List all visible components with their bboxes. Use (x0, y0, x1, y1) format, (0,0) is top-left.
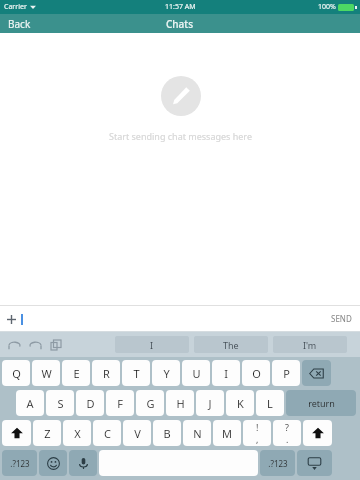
staticText: , (256, 433, 259, 445)
staticText: H (176, 396, 185, 411)
button[interactable]: G (136, 390, 164, 416)
button[interactable]: Redo (26, 336, 44, 354)
button[interactable]: .?123 (2, 450, 37, 476)
button[interactable]: M (213, 420, 241, 446)
button[interactable]: X (63, 420, 91, 446)
button[interactable]: Add attachment (4, 312, 18, 326)
staticText: 100% (318, 2, 336, 12)
staticText: I (150, 339, 154, 351)
staticText: ? (285, 421, 289, 433)
staticText: U (192, 366, 201, 381)
button[interactable]: I (115, 336, 189, 353)
button[interactable]: J (196, 390, 224, 416)
staticText: P (283, 366, 290, 381)
button[interactable]: T (122, 360, 150, 386)
staticText: V (134, 426, 141, 441)
button[interactable]: L (256, 390, 284, 416)
staticText: W (41, 366, 52, 381)
button[interactable]: Shift (2, 420, 31, 446)
button[interactable]: Shift (303, 420, 332, 446)
staticText: I (224, 366, 228, 381)
button[interactable]: A (16, 390, 44, 416)
staticText: R (103, 366, 110, 381)
staticText: Y (163, 366, 170, 381)
button[interactable]: Q (2, 360, 30, 386)
button[interactable]: Question period (273, 420, 301, 446)
staticText: Z (44, 426, 51, 441)
staticText: G (146, 396, 155, 411)
staticText: M (222, 426, 232, 441)
button[interactable]: N (183, 420, 211, 446)
staticText: K (237, 396, 244, 411)
button[interactable]: K (226, 390, 254, 416)
staticText: C (104, 426, 111, 441)
staticText: return (308, 397, 335, 409)
staticText: Start sending chat messages here (109, 130, 252, 142)
staticText: S (57, 396, 64, 411)
button[interactable]: Hide keyboard (297, 450, 332, 476)
staticText: L (267, 396, 273, 411)
staticText: . (286, 433, 289, 445)
button[interactable]: return (286, 390, 356, 416)
staticText: 11:57 AM (165, 2, 196, 12)
staticText: E (73, 366, 80, 381)
button[interactable]: E (62, 360, 90, 386)
staticText: Q (12, 366, 21, 381)
button[interactable]: Z (33, 420, 61, 446)
staticText: N (193, 426, 202, 441)
button[interactable]: S (46, 390, 74, 416)
staticText: Chats (166, 17, 194, 31)
button[interactable]: F (106, 390, 134, 416)
button[interactable]: P (272, 360, 300, 386)
button[interactable]: H (166, 390, 194, 416)
button[interactable]: Space (99, 450, 258, 476)
button[interactable]: Back (8, 17, 31, 31)
staticText: B (163, 426, 171, 441)
button[interactable]: Emoji (39, 450, 67, 476)
button[interactable]: D (76, 390, 104, 416)
staticText: The (223, 339, 239, 351)
button[interactable]: Paste (47, 336, 65, 354)
staticText: A (26, 396, 34, 411)
button[interactable]: Voice input (69, 450, 97, 476)
button[interactable]: I (212, 360, 240, 386)
button[interactable]: O (242, 360, 270, 386)
staticText: F (117, 396, 123, 411)
button[interactable]: R (92, 360, 120, 386)
button[interactable]: Undo (5, 336, 23, 354)
staticText: .?123 (10, 458, 30, 469)
staticText: X (74, 426, 81, 441)
staticText: SEND (331, 313, 352, 324)
button[interactable]: Y (152, 360, 180, 386)
staticText: ! (256, 421, 259, 433)
staticText: I'm (303, 339, 317, 351)
staticText: .?123 (268, 458, 288, 469)
staticText: J (208, 396, 212, 411)
button[interactable]: SEND (331, 313, 352, 324)
staticText: Carrier (4, 2, 27, 12)
button[interactable]: The (194, 336, 268, 353)
button[interactable]: C (93, 420, 121, 446)
button[interactable]: Backspace (302, 360, 331, 386)
button[interactable]: B (153, 420, 181, 446)
button[interactable]: Exclamation comma (243, 420, 271, 446)
button[interactable]: .?123 (260, 450, 295, 476)
staticText: O (252, 366, 261, 381)
button[interactable]: W (32, 360, 60, 386)
staticText: Back (8, 17, 31, 31)
staticText: D (86, 396, 95, 411)
staticText: T (133, 366, 140, 381)
button[interactable]: V (123, 420, 151, 446)
button[interactable]: I'm (273, 336, 347, 353)
button[interactable]: U (182, 360, 210, 386)
